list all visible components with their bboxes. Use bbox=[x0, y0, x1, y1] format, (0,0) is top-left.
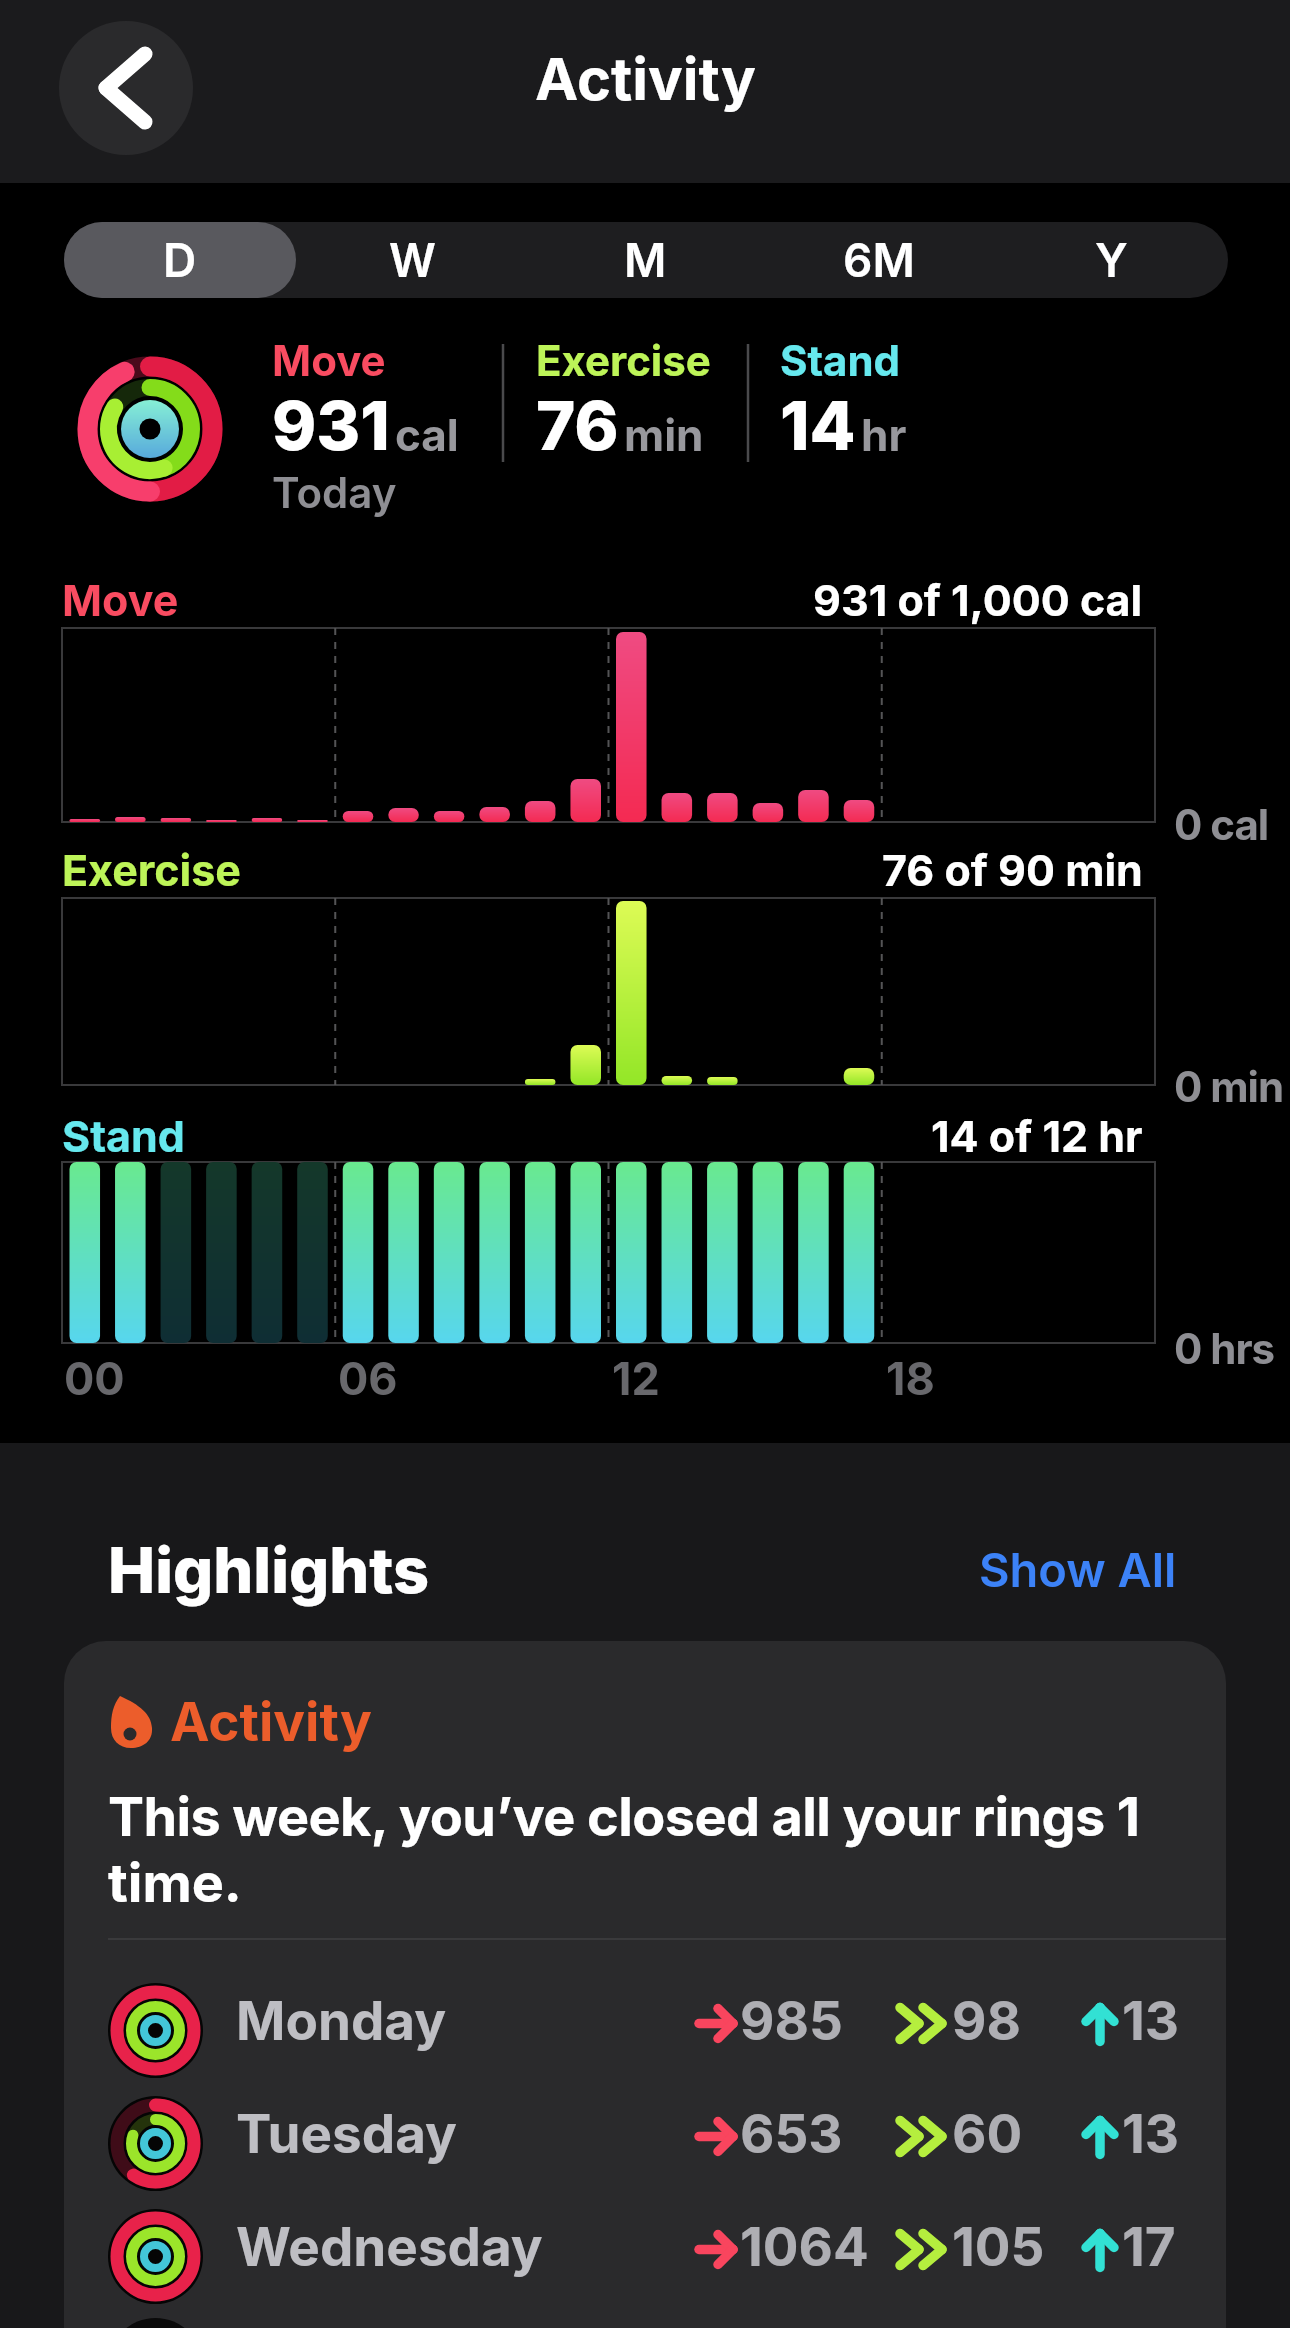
staticText: 6M bbox=[843, 232, 915, 288]
staticText: M bbox=[624, 232, 667, 288]
staticText: Stand bbox=[62, 1110, 185, 1162]
staticText: 13 bbox=[1122, 2102, 1180, 2166]
button[interactable]: 6M bbox=[762, 222, 995, 298]
staticText: 17 bbox=[1122, 2215, 1176, 2279]
staticText: 14 of 12 hr bbox=[931, 1110, 1143, 1162]
button[interactable]: W bbox=[296, 222, 529, 298]
staticText: 06 bbox=[338, 1351, 398, 1405]
staticText: Exercise bbox=[62, 844, 241, 896]
staticText: Activity bbox=[170, 1690, 372, 1754]
staticText: Wednesday bbox=[236, 2215, 543, 2279]
staticText: 18 bbox=[886, 1351, 935, 1405]
staticText: 60 bbox=[952, 2102, 1023, 2166]
button[interactable]: D bbox=[64, 222, 296, 298]
staticText: Today bbox=[272, 467, 397, 518]
button[interactable]: Y bbox=[995, 222, 1228, 298]
button[interactable] bbox=[59, 21, 193, 155]
button[interactable] bbox=[64, 2199, 1226, 2313]
staticText: Highlights bbox=[108, 1532, 430, 1608]
staticText: Y bbox=[1095, 232, 1128, 288]
staticText: Stand bbox=[780, 335, 901, 386]
staticText: 00 bbox=[64, 1351, 125, 1405]
staticText: 985 bbox=[740, 1989, 843, 2053]
staticText: Tuesday bbox=[236, 2102, 457, 2166]
button[interactable] bbox=[64, 1641, 1226, 2328]
staticText: This week, you’ve closed all your rings … bbox=[108, 1784, 1140, 1849]
staticText: 653 bbox=[740, 2102, 843, 2166]
staticText: D bbox=[163, 232, 197, 288]
staticText: 14 bbox=[780, 385, 856, 466]
staticText: cal bbox=[395, 408, 459, 461]
button[interactable]: Show All bbox=[979, 1541, 1177, 1598]
staticText: hr bbox=[861, 408, 907, 461]
staticText: 931 of 1,000 cal bbox=[813, 574, 1143, 626]
staticText: time. bbox=[108, 1850, 242, 1915]
staticText: 0 hrs bbox=[1174, 1323, 1275, 1374]
staticText: 76 of 90 min bbox=[882, 844, 1143, 896]
button[interactable]: M bbox=[529, 222, 762, 298]
staticText: 105 bbox=[952, 2215, 1045, 2279]
staticText: Move bbox=[272, 335, 386, 386]
staticText: 0 min bbox=[1174, 1061, 1284, 1112]
staticText: min bbox=[624, 408, 704, 461]
staticText: 1064 bbox=[740, 2215, 869, 2279]
staticText: 98 bbox=[952, 1989, 1021, 2053]
staticText: 13 bbox=[1122, 1989, 1180, 2053]
button[interactable] bbox=[64, 1973, 1226, 2087]
staticText: Exercise bbox=[536, 335, 711, 386]
staticText: Monday bbox=[236, 1989, 447, 2053]
staticText: Activity bbox=[535, 44, 756, 114]
button[interactable] bbox=[64, 2086, 1226, 2200]
staticText: 0 cal bbox=[1174, 799, 1269, 850]
staticText: 12 bbox=[612, 1351, 660, 1405]
staticText: Move bbox=[62, 574, 179, 626]
staticText: W bbox=[389, 232, 436, 288]
staticText: 76 bbox=[536, 385, 619, 466]
staticText: 931 bbox=[272, 385, 390, 466]
